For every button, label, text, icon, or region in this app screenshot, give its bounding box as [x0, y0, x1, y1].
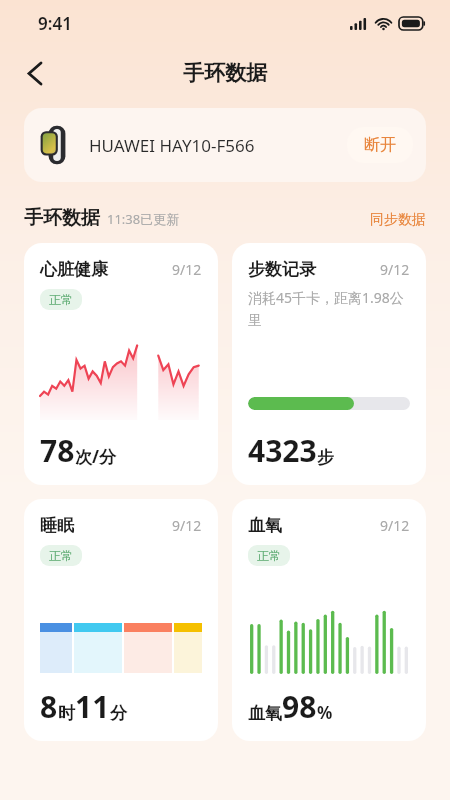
staticText: 血氧	[248, 703, 282, 724]
staticText: HUAWEI HAY10-F566	[89, 134, 347, 157]
button[interactable]: HUAWEI HAY10-F566	[24, 108, 426, 182]
staticText: 同步数据	[370, 211, 426, 229]
staticText: 次/分	[75, 445, 117, 468]
staticText: 78	[40, 430, 75, 471]
staticText: 断开	[364, 135, 396, 155]
staticText: 4323	[248, 430, 317, 471]
button[interactable]: 血氧	[232, 499, 426, 741]
staticText: 9/12	[172, 516, 202, 535]
staticText: 9/12	[380, 260, 410, 279]
staticText: 11	[75, 686, 110, 727]
staticText: 正常	[257, 548, 281, 563]
button[interactable]: Back	[12, 50, 58, 96]
staticText: 11:38已更新	[107, 210, 180, 228]
staticText: 98	[282, 686, 317, 727]
staticText: 血氧	[248, 515, 282, 536]
staticText: 手环数据	[183, 60, 267, 86]
staticText: 时	[58, 703, 75, 724]
staticText: 9/12	[380, 516, 410, 535]
button[interactable]: 睡眠	[24, 499, 218, 741]
staticText: 睡眠	[40, 515, 74, 536]
staticText: 手环数据	[24, 206, 100, 230]
button[interactable]: 步数记录	[232, 243, 426, 485]
button[interactable]: 断开	[347, 127, 413, 163]
staticText: 正常	[49, 292, 73, 307]
staticText: %	[317, 701, 333, 724]
staticText: 分	[110, 703, 127, 724]
staticText: 步	[317, 447, 334, 468]
staticText: 心脏健康	[40, 259, 108, 280]
staticText: 消耗45千卡，距离1.98公里	[248, 288, 410, 330]
staticText: 正常	[49, 548, 73, 563]
staticText: 9:41	[38, 12, 72, 35]
staticText: 步数记录	[248, 259, 316, 280]
staticText: 9/12	[172, 260, 202, 279]
staticText: 8	[40, 686, 58, 727]
button[interactable]: 同步数据	[370, 211, 426, 230]
button[interactable]: 心脏健康	[24, 243, 218, 485]
